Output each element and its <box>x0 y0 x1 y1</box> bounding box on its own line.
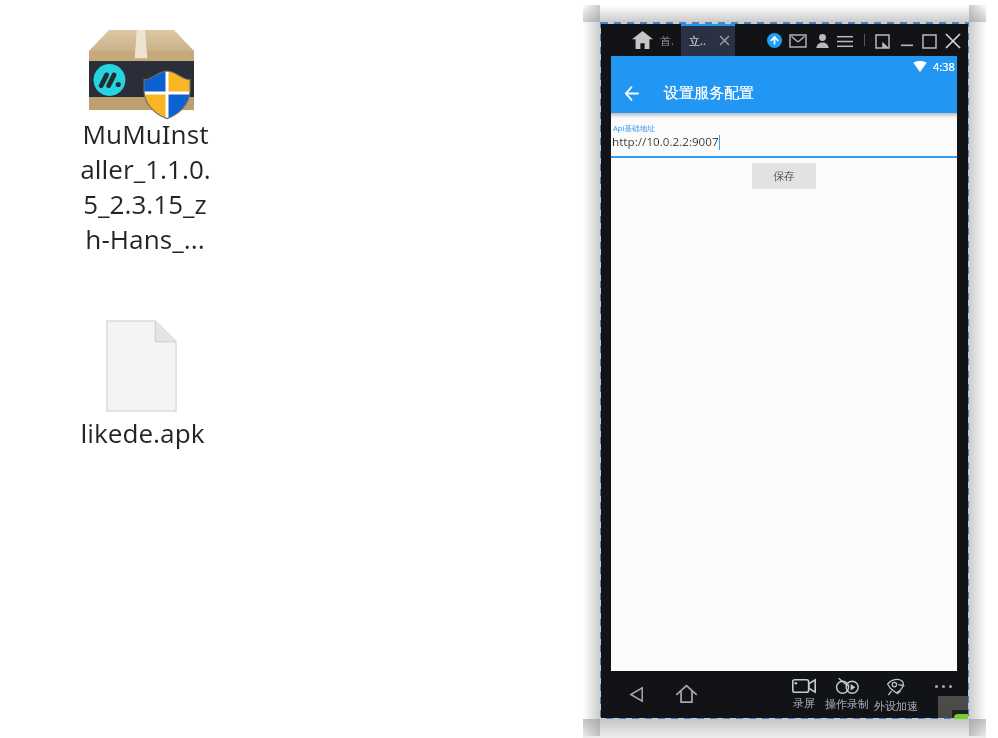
staticText: 外设加速 <box>874 699 918 713</box>
button[interactable]: 保存 <box>752 163 816 189</box>
staticText: aller_1.1.0. <box>80 151 211 186</box>
staticText: 设置服务配置 <box>664 84 754 103</box>
button[interactable]: More options <box>931 679 955 693</box>
staticText: 操作录制 <box>825 697 869 711</box>
button[interactable]: Restore window <box>872 31 892 51</box>
staticText: 保存 <box>773 169 795 183</box>
button[interactable]: 录屏 <box>783 679 825 710</box>
button[interactable]: Account <box>812 31 832 51</box>
staticText: 4:38 <box>933 59 955 74</box>
button[interactable]: Close <box>943 31 963 51</box>
staticText: 录屏 <box>793 696 815 710</box>
button[interactable]: Menu <box>835 31 855 51</box>
button[interactable]: likede.apk <box>62 415 222 450</box>
button[interactable]: Messages <box>788 31 808 51</box>
button[interactable]: Maximize <box>919 31 939 51</box>
staticText: http://10.0.2.2:9007 <box>612 134 719 150</box>
button[interactable]: Back <box>623 681 649 707</box>
staticText: Api基础地址 <box>613 123 655 133</box>
button[interactable]: 立.. <box>681 24 735 56</box>
button[interactable]: Minimize <box>897 31 917 51</box>
staticText: 立.. <box>689 33 706 48</box>
button[interactable]: Home <box>630 28 654 52</box>
button[interactable]: Upgrade <box>764 30 784 50</box>
button[interactable]: MuMuInst <box>72 116 218 256</box>
staticText: 5_2.3.15_z <box>83 186 207 221</box>
staticText: h-Hans_... <box>85 221 205 256</box>
staticText: likede.apk <box>80 415 205 450</box>
button[interactable]: Close tab <box>715 31 733 49</box>
button[interactable]: 外设加速 <box>869 679 923 713</box>
button[interactable]: Home <box>673 681 699 707</box>
staticText: 首. <box>660 33 674 48</box>
button[interactable]: Back <box>619 81 643 105</box>
staticText: MuMuInst <box>82 116 209 151</box>
button[interactable]: 操作录制 <box>817 679 877 711</box>
